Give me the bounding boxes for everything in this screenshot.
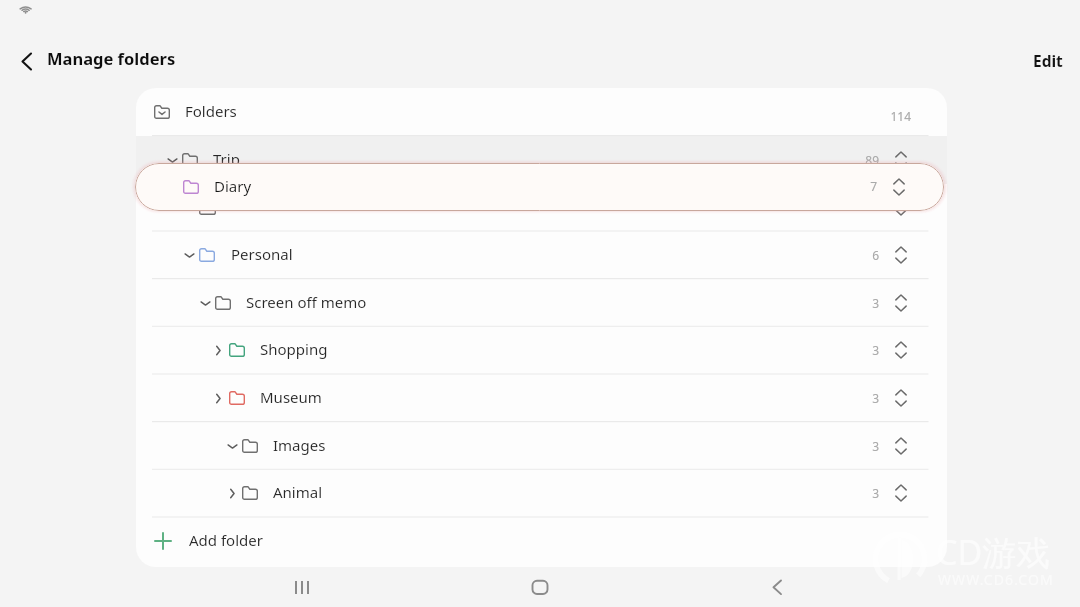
button[interactable]: Folders	[136, 88, 947, 136]
button[interactable]: Reorder	[889, 243, 913, 267]
button[interactable]: Shopping	[136, 326, 947, 374]
staticText: Trip	[213, 149, 240, 169]
button[interactable]: Museum	[136, 374, 947, 422]
staticText: Personal	[231, 244, 293, 264]
staticText: Animal	[273, 482, 323, 502]
button[interactable]: Reorder	[889, 434, 913, 458]
button[interactable]: Reorder	[889, 481, 913, 505]
button[interactable]: Reorder	[136, 183, 947, 231]
button[interactable]: Back	[10, 44, 44, 78]
staticText: 3	[853, 390, 879, 406]
staticText: CD游戏	[936, 529, 1051, 575]
staticText: 6	[853, 247, 879, 263]
staticText: Screen off memo	[246, 292, 367, 312]
other: Reorder	[889, 195, 913, 219]
button[interactable]: Reorder	[889, 386, 913, 410]
staticText: Edit	[1033, 50, 1063, 71]
other: Reorder	[887, 175, 911, 199]
button[interactable]: Edit	[1023, 44, 1073, 77]
staticText: 3	[853, 342, 879, 358]
staticText: 7	[851, 178, 877, 194]
staticText: Manage folders	[47, 47, 176, 69]
button[interactable]: Screen off memo	[136, 279, 947, 327]
button[interactable]: Diary	[135, 163, 944, 211]
staticText: 89	[853, 152, 879, 168]
button[interactable]: Animal	[136, 469, 947, 517]
staticText: 3	[853, 438, 879, 454]
button[interactable]: Reorder	[889, 291, 913, 315]
button[interactable]: Images	[136, 422, 947, 470]
staticText: Diary	[214, 176, 252, 196]
staticText: Images	[273, 435, 326, 455]
staticText: 3	[853, 485, 879, 501]
button[interactable]: Personal	[136, 231, 947, 279]
staticText: Folders	[185, 101, 237, 121]
staticText: Museum	[260, 387, 322, 407]
button[interactable]: Trip	[136, 136, 947, 184]
staticText: 114	[869, 108, 911, 124]
button[interactable]: Back	[753, 563, 801, 607]
button[interactable]: Recent apps	[278, 563, 326, 607]
staticText: Shopping	[260, 339, 328, 359]
staticText: 3	[853, 295, 879, 311]
button[interactable]: Add folder	[136, 517, 947, 565]
button[interactable]: Reorder	[889, 148, 913, 172]
button[interactable]: Reorder	[889, 338, 913, 362]
staticText: Add folder	[189, 530, 263, 550]
button[interactable]: Home	[516, 563, 564, 607]
